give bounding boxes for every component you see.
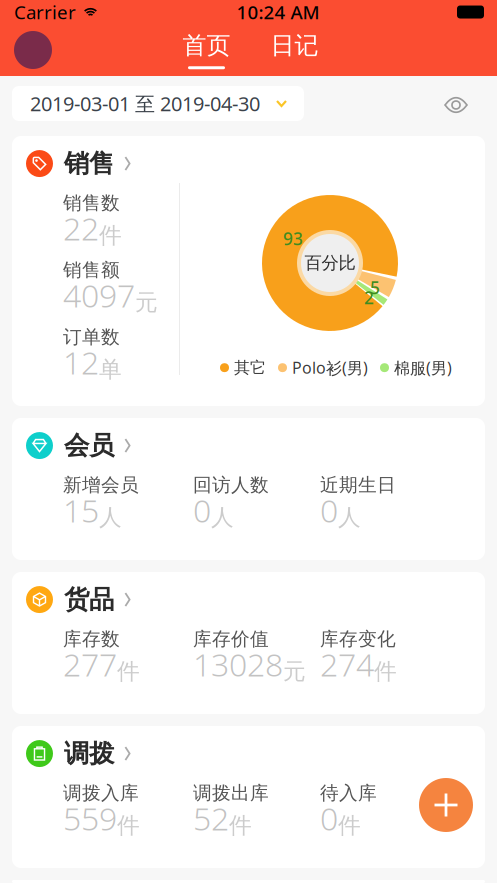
staticText: 新增会员 <box>63 474 139 497</box>
button[interactable]: 2019-03-01 至 2019-04-30 <box>12 86 304 121</box>
staticText: 件 <box>99 221 122 249</box>
staticText: 277 <box>63 643 117 685</box>
staticText: 4097 <box>63 274 135 316</box>
staticText: 人 <box>99 503 122 531</box>
staticText: 待入库 <box>320 782 377 805</box>
staticText: 销售 <box>64 148 114 179</box>
staticText: 人 <box>211 503 234 531</box>
button[interactable]: Add <box>419 778 473 832</box>
staticText: 日记 <box>270 31 318 60</box>
staticText: 2 <box>364 286 374 309</box>
staticText: 人 <box>338 503 361 531</box>
staticText: 库存数 <box>63 628 120 651</box>
staticText: 棉服(男) <box>394 357 452 378</box>
staticText: 调拨出库 <box>193 782 269 805</box>
staticText: 件 <box>374 657 397 685</box>
button[interactable]: 会员 <box>12 418 485 461</box>
staticText: 单 <box>99 355 122 383</box>
staticText: 0 <box>320 797 338 839</box>
staticText: 52 <box>193 797 229 839</box>
staticText: 销售数 <box>63 192 120 215</box>
staticText: 2019-03-01 至 2019-04-30 <box>30 90 260 117</box>
staticText: 5 <box>370 276 380 299</box>
staticText: 首页 <box>182 31 230 60</box>
staticText: 0 <box>320 489 338 531</box>
staticText: 库存价值 <box>193 628 269 651</box>
staticText: 百分比 <box>304 252 355 274</box>
button[interactable]: 首页 <box>177 31 235 69</box>
button[interactable]: 销售 <box>12 136 485 179</box>
staticText: 12 <box>63 341 99 383</box>
staticText: 元 <box>135 288 158 316</box>
button[interactable]: 货品 <box>12 572 485 615</box>
staticText: 回访人数 <box>193 474 269 497</box>
staticText: 274 <box>320 643 374 685</box>
staticText: 件 <box>338 811 361 839</box>
button[interactable]: Toggle visibility <box>441 87 483 120</box>
staticText: 元 <box>283 657 306 685</box>
staticText: 10:24 AM <box>236 0 319 24</box>
staticText: 93 <box>283 227 303 250</box>
staticText: 其它 <box>234 358 266 377</box>
staticText: 件 <box>117 811 140 839</box>
staticText: 调拨 <box>64 738 114 769</box>
staticText: 13028 <box>193 643 283 685</box>
staticText: 货品 <box>64 584 114 615</box>
button[interactable]: 日记 <box>265 31 323 69</box>
staticText: 会员 <box>64 430 114 461</box>
staticText: 库存变化 <box>320 628 396 651</box>
staticText: 559 <box>63 797 117 839</box>
staticText: 22 <box>63 207 99 249</box>
staticText: 调拨入库 <box>63 782 139 805</box>
staticText: Carrier <box>14 0 76 24</box>
staticText: 15 <box>63 489 99 531</box>
staticText: Polo衫(男) <box>292 357 368 378</box>
button[interactable]: Profile <box>14 31 52 69</box>
staticText: 0 <box>193 489 211 531</box>
staticText: 销售额 <box>63 259 120 282</box>
button[interactable]: 调拨 <box>12 726 485 769</box>
staticText: 订单数 <box>63 326 120 349</box>
staticText: 件 <box>117 657 140 685</box>
staticText: 近期生日 <box>320 474 396 497</box>
staticText: 件 <box>229 811 252 839</box>
